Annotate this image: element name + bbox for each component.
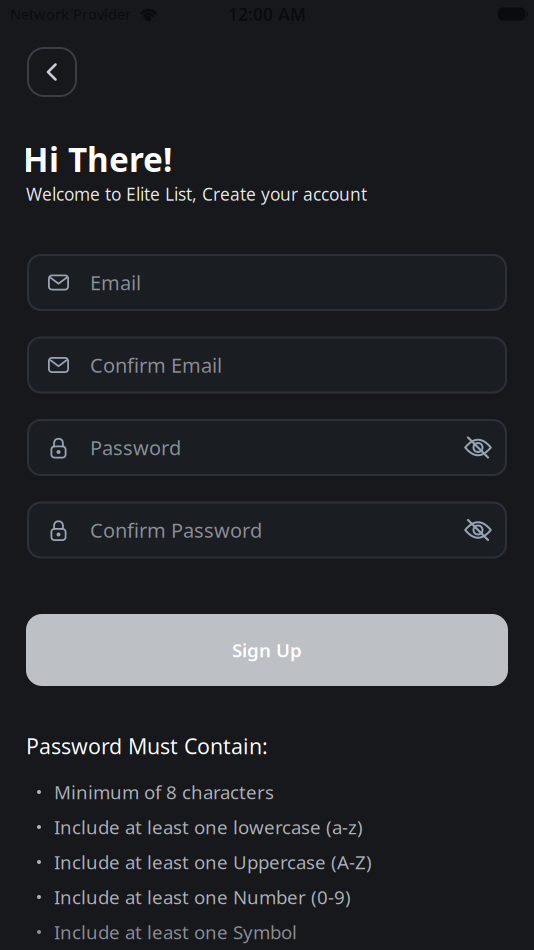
button[interactable]: Password <box>27 419 507 476</box>
staticText: Confirm Password <box>90 517 262 543</box>
staticText: Sign Up <box>232 638 302 662</box>
staticText: Include at least one Uppercase (A-Z) <box>54 850 372 874</box>
staticText: Hi There! <box>23 137 172 181</box>
button[interactable]: Back <box>27 47 77 97</box>
staticText: Include at least one lowercase (a-z) <box>54 815 363 839</box>
staticText: Network Provider <box>10 4 131 24</box>
staticText: Password Must Contain: <box>26 732 268 760</box>
staticText: Email <box>90 269 141 296</box>
button[interactable]: Show password <box>464 436 492 458</box>
staticText: Password <box>90 434 181 461</box>
button[interactable]: Email <box>27 254 507 311</box>
staticText: Welcome to Elite List, Create your accou… <box>26 182 367 205</box>
button[interactable]: Confirm Email <box>27 336 507 393</box>
staticText: Include at least one Number (0-9) <box>54 885 351 909</box>
button[interactable]: Confirm Password <box>27 501 507 558</box>
staticText: Confirm Email <box>90 352 222 378</box>
staticText: Include at least one Symbol <box>54 920 297 944</box>
button[interactable]: Show password <box>464 519 492 541</box>
staticText: Minimum of 8 characters <box>54 780 274 804</box>
staticText: 12:00 AM <box>228 2 306 25</box>
button[interactable]: Sign Up <box>26 614 508 686</box>
